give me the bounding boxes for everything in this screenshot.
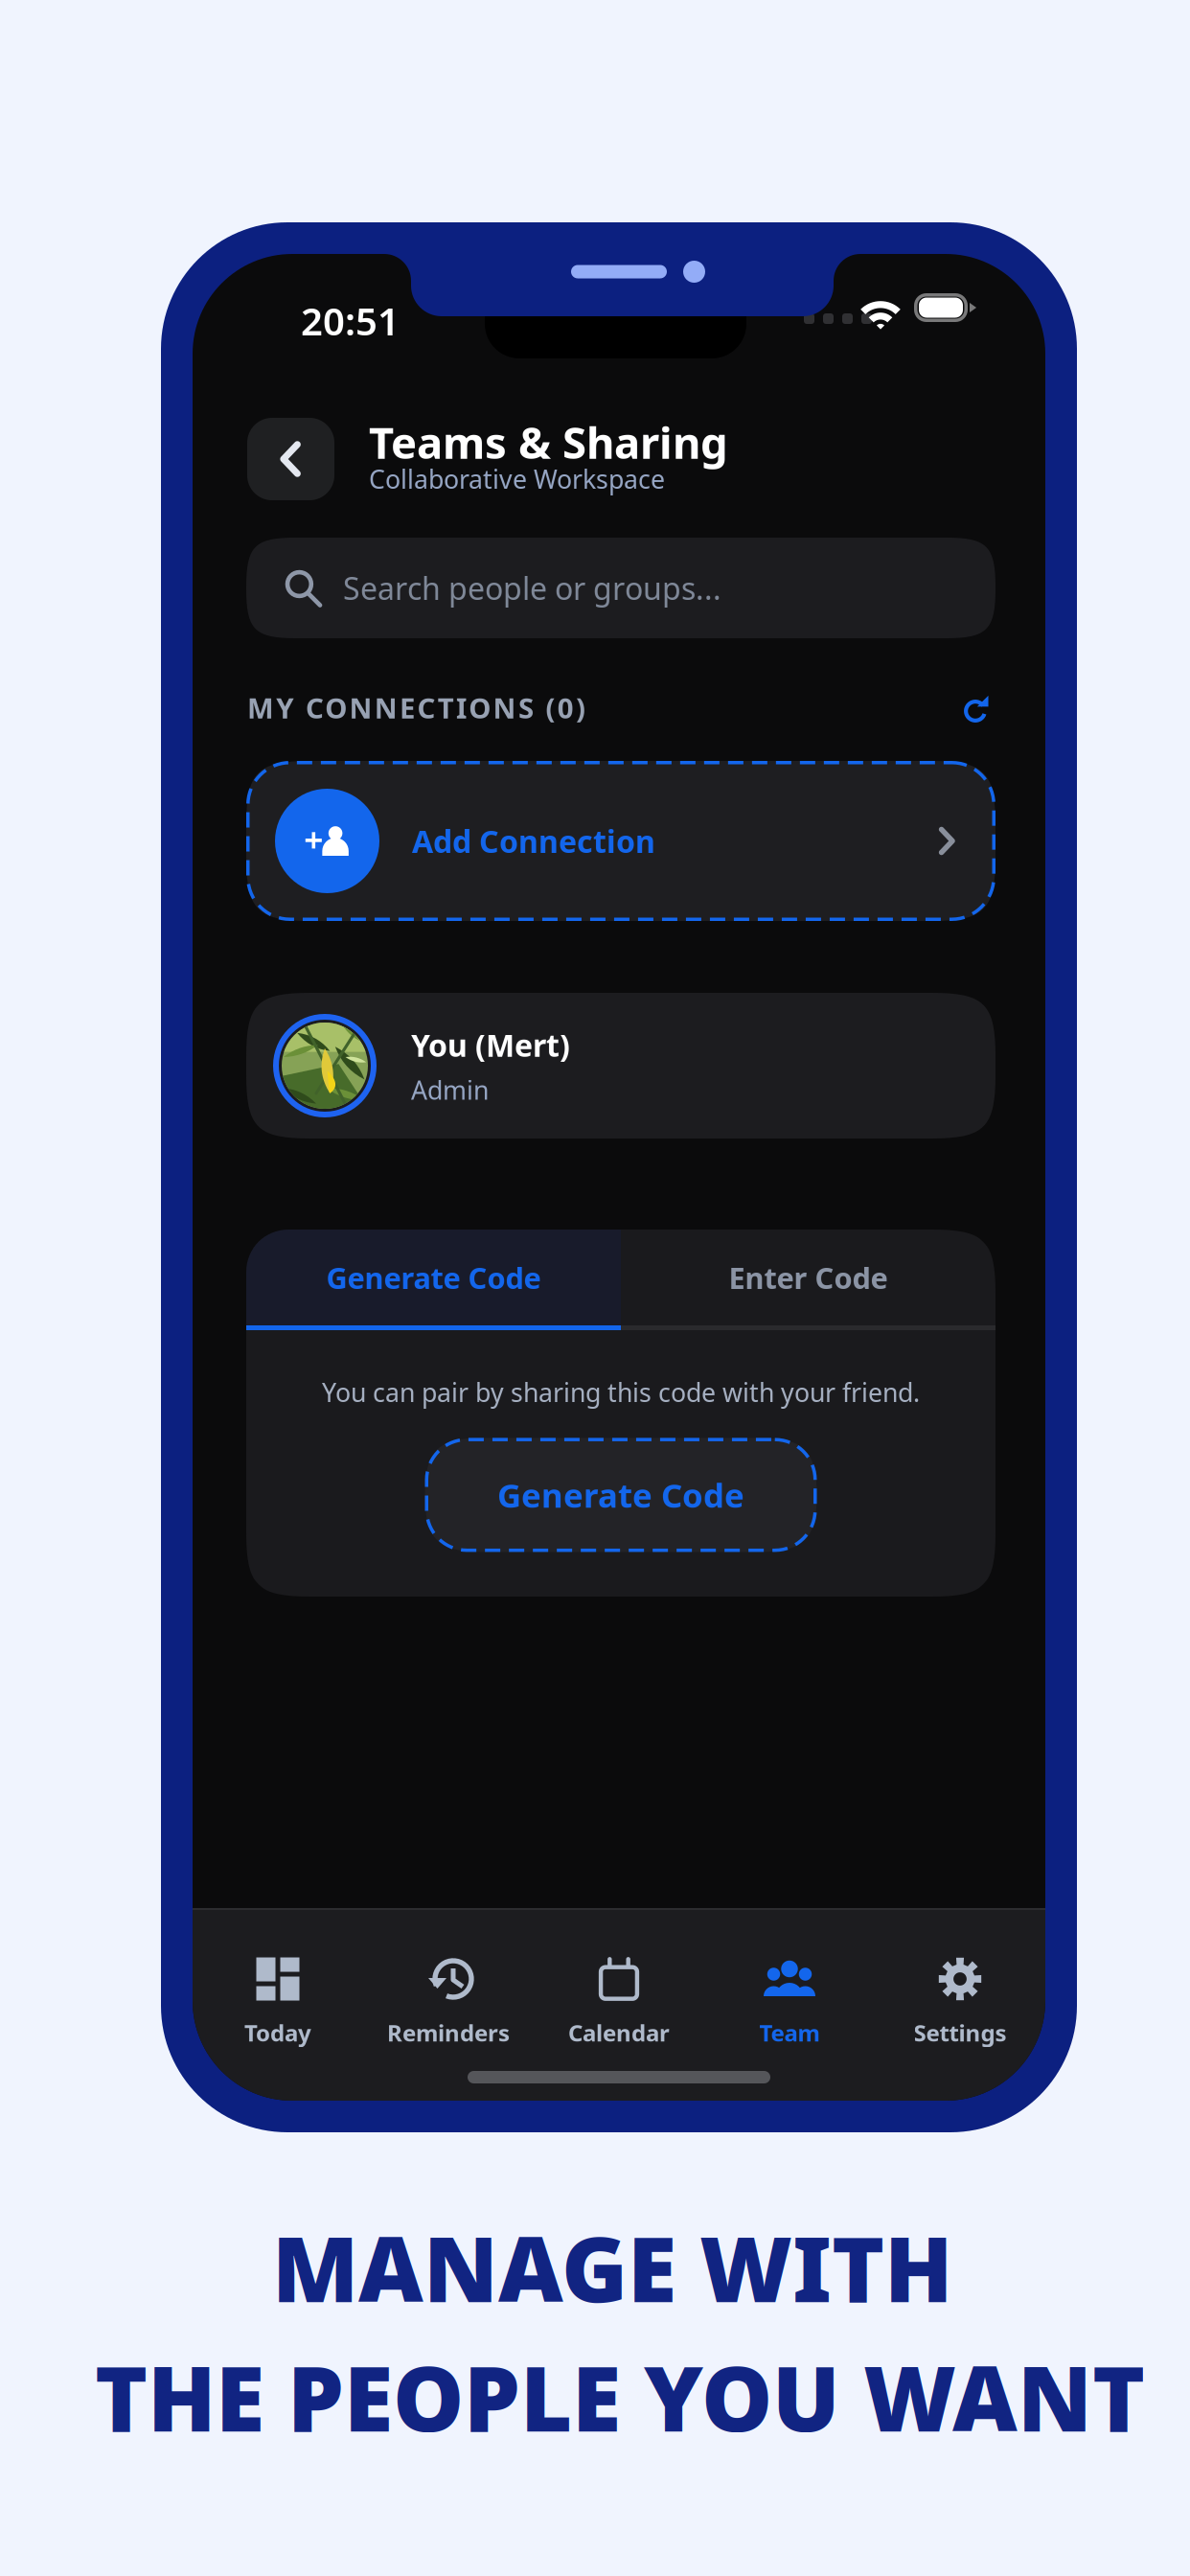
- staticText: Reminders: [387, 2017, 510, 2048]
- staticText: Settings: [914, 2017, 1007, 2048]
- staticText: Today: [244, 2017, 311, 2048]
- staticText: Generate Code: [497, 1473, 744, 1517]
- button[interactable]: Settings: [875, 1908, 1045, 2061]
- staticText: You can pair by sharing this code with y…: [322, 1375, 920, 1409]
- staticText: Collaborative Workspace: [369, 462, 665, 496]
- button[interactable]: Enter Code: [621, 1230, 995, 1330]
- staticText: Admin: [411, 1073, 489, 1107]
- button[interactable]: Add Connection: [246, 761, 995, 921]
- staticText: Calendar: [568, 2017, 670, 2048]
- button[interactable]: Generate Code: [425, 1438, 817, 1552]
- staticText: Generate Code: [326, 1258, 541, 1297]
- button[interactable]: Team: [704, 1908, 875, 2061]
- staticText: MANAGE WITH: [272, 2208, 952, 2327]
- staticText: Add Connection: [412, 821, 655, 861]
- staticText: MY CONNECTIONS (0): [247, 689, 586, 726]
- button[interactable]: Generate Code: [246, 1230, 621, 1330]
- staticText: THE PEOPLE YOU WANT: [95, 2337, 1145, 2456]
- button[interactable]: Calendar: [534, 1908, 704, 2061]
- button[interactable]: Back: [247, 418, 334, 500]
- button[interactable]: Search people or groups...: [246, 538, 995, 638]
- staticText: 20:51: [301, 295, 400, 346]
- staticText: Team: [759, 2017, 820, 2048]
- staticText: Search people or groups...: [343, 568, 721, 608]
- button[interactable]: Refresh: [949, 684, 1002, 738]
- staticText: Teams & Sharing: [369, 413, 728, 471]
- staticText: You (Mert): [411, 1024, 570, 1065]
- staticText: Enter Code: [729, 1258, 888, 1297]
- button[interactable]: Reminders: [363, 1908, 534, 2061]
- button[interactable]: Today: [193, 1908, 363, 2061]
